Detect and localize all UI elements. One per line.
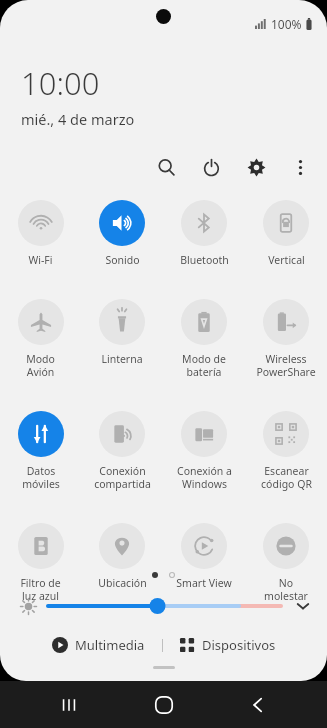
button[interactable]: Recent apps [44,681,94,728]
button[interactable]: Modo Avión [0,299,81,379]
staticText: Sonido [105,253,140,267]
staticText: Bluetooth [180,253,229,267]
button[interactable]: Linterna [81,299,163,366]
staticText: Wireless PowerShare [256,352,316,379]
button[interactable]: Sonido [81,200,163,267]
staticText: Multimedia [75,636,145,654]
button[interactable]: Settings [241,152,271,182]
button[interactable]: Vertical [245,200,327,267]
staticText: Vertical [268,253,305,267]
staticText: Datos móviles [22,464,60,491]
staticText: Modo Avión [26,352,55,379]
button[interactable]: Ubicación [81,523,163,590]
button[interactable]: Conexión compartida [81,411,163,491]
button[interactable]: Expand brightness [289,592,317,620]
staticText: 10:00 [21,62,100,104]
staticText: 100% [271,16,302,32]
button[interactable]: Home [139,681,189,728]
button[interactable]: Conexión a Windows [163,411,245,491]
button[interactable]: Bluetooth [163,200,245,267]
staticText: Filtro de luz azul [20,576,61,603]
staticText: Conexión a Windows [177,464,232,491]
button[interactable]: No molestar [245,523,327,603]
button[interactable]: Dispositivos [176,632,280,658]
staticText: Modo de batería [182,352,226,379]
staticText: Smart View [176,576,232,590]
staticText: Ubicación [98,576,147,590]
button[interactable]: Power [196,152,226,182]
button[interactable]: Modo de batería [163,299,245,379]
staticText: Escanear código QR [261,464,312,491]
button[interactable]: Wi-Fi [0,200,81,267]
button[interactable] [48,593,281,619]
button[interactable]: Smart View [163,523,245,590]
button[interactable]: Search [151,152,181,182]
button[interactable]: Back [233,681,283,728]
button[interactable]: Brightness [14,592,42,620]
staticText: Wi-Fi [28,253,53,267]
button[interactable]: Datos móviles [0,411,81,491]
staticText: Dispositivos [202,636,276,654]
button[interactable]: More options [285,152,315,182]
staticText: No molestar [264,576,308,603]
staticText: Conexión compartida [94,464,151,491]
staticText: Linterna [101,352,143,366]
button[interactable]: Multimedia [48,632,149,658]
staticText: mié., 4 de marzo [21,109,135,129]
button[interactable]: Wireless PowerShare [245,299,327,379]
button[interactable]: Escanear código QR [245,411,327,491]
button[interactable]: Filtro de luz azul [0,523,81,603]
